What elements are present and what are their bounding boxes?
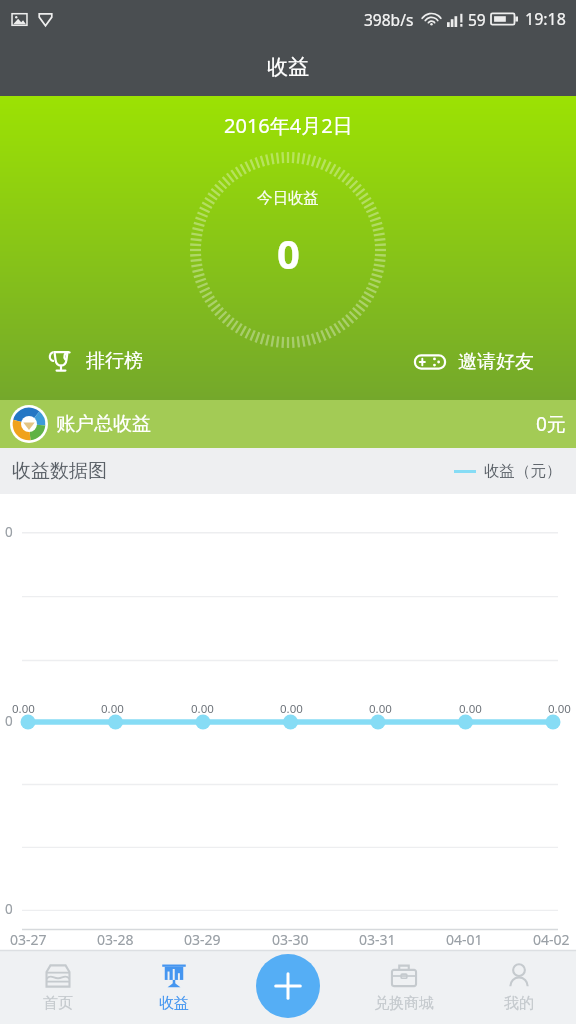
staticText: 398b/s (364, 9, 414, 30)
staticText: 邀请好友 (458, 350, 534, 374)
staticText: 0.00 (101, 701, 124, 717)
staticText: 04-02 (533, 930, 570, 949)
button[interactable]: 收益 (116, 950, 231, 1024)
button[interactable]: Add (256, 954, 320, 1018)
button[interactable]: 排行榜 (44, 344, 147, 378)
staticText: 收益 (267, 54, 309, 80)
staticText: 03-27 (10, 930, 47, 949)
staticText: 0.00 (12, 701, 35, 717)
staticText: 今日收益 (257, 188, 319, 208)
staticText: 0 (5, 712, 13, 730)
staticText: 04-01 (446, 930, 483, 949)
staticText: 2016年4月2日 (224, 112, 353, 139)
staticText: 收益 (159, 994, 189, 1013)
staticText: 59 (468, 9, 486, 30)
button[interactable]: 账户总收益 (0, 400, 576, 448)
staticText: 0.00 (280, 701, 303, 717)
staticText: 03-29 (184, 930, 221, 949)
staticText: 03-31 (359, 930, 396, 949)
button[interactable]: 兑换商城 (346, 950, 461, 1024)
staticText: 收益数据图 (12, 459, 107, 483)
button[interactable]: 首页 (0, 950, 116, 1024)
staticText: 0 (5, 523, 13, 541)
staticText: 排行榜 (86, 349, 143, 373)
staticText: 0.00 (369, 701, 392, 717)
staticText: 03-30 (272, 930, 309, 949)
staticText: 19:18 (525, 8, 566, 30)
staticText: 0.00 (191, 701, 214, 717)
staticText: 我的 (504, 994, 534, 1013)
staticText: 0 (277, 226, 300, 280)
button[interactable]: 我的 (461, 950, 576, 1024)
staticText: 0.00 (459, 701, 482, 717)
staticText: 兑换商城 (374, 994, 434, 1013)
staticText: 0.00 (548, 701, 571, 717)
staticText: 03-28 (97, 930, 134, 949)
staticText: 收益（元） (484, 461, 562, 481)
button[interactable]: 邀请好友 (410, 346, 538, 378)
staticText: 账户总收益 (56, 412, 151, 436)
staticText: 首页 (43, 994, 73, 1013)
staticText: 0 (5, 900, 13, 918)
staticText: 0元 (536, 411, 566, 437)
